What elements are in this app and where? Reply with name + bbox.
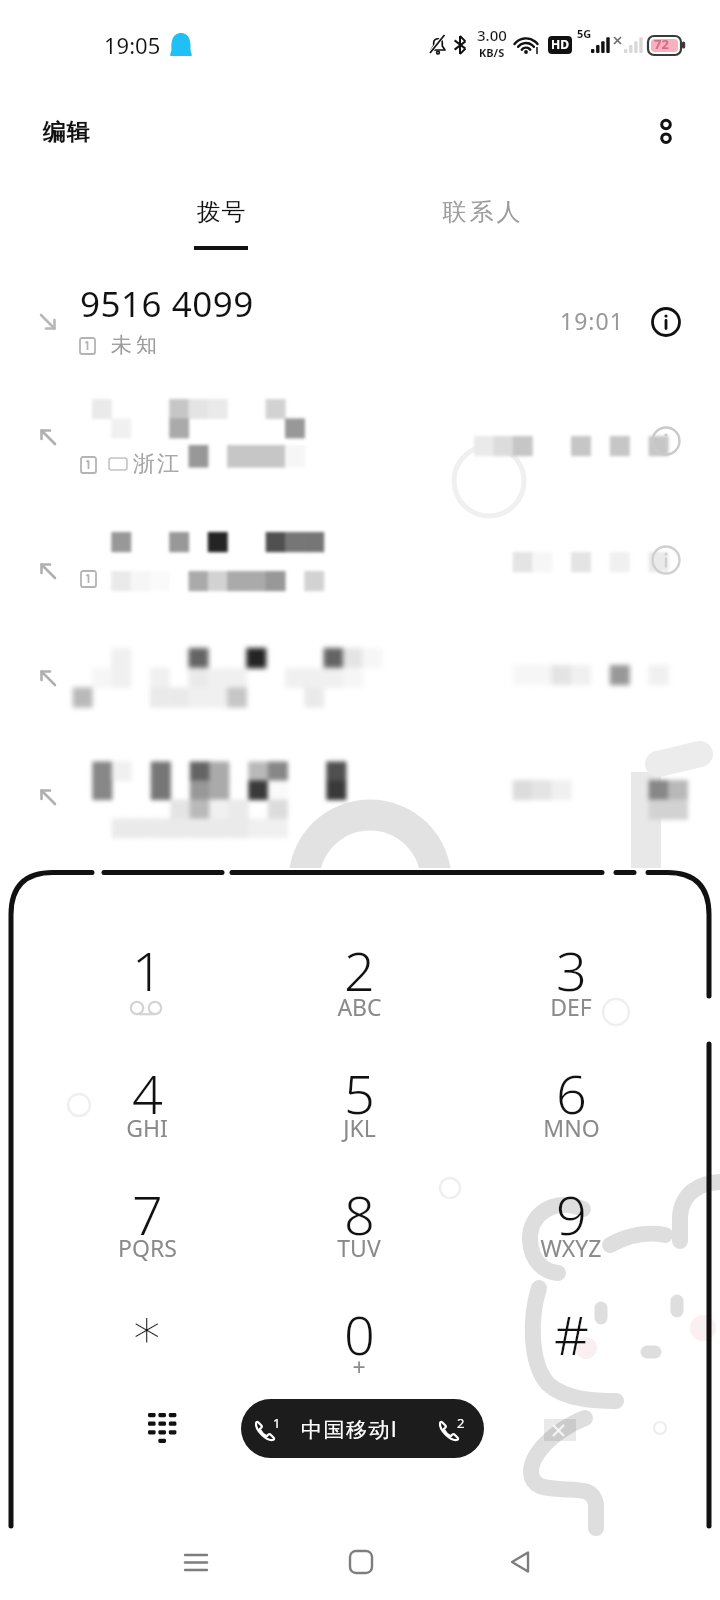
staticText: 2 (457, 1414, 465, 1432)
staticText: 2 (344, 933, 375, 1007)
button[interactable]: Recent apps (158, 1534, 233, 1590)
button[interactable]: 拨号 (151, 197, 291, 265)
staticText: # (554, 1297, 589, 1371)
staticText: ABC (337, 991, 382, 1022)
staticText: 8 (344, 1177, 375, 1251)
staticText: 7 (132, 1177, 163, 1251)
button[interactable]: Back (483, 1534, 558, 1590)
button[interactable]: More options (638, 104, 694, 160)
staticText: GHI (126, 1112, 168, 1143)
button[interactable]: 联系人 (411, 197, 551, 265)
button[interactable]: 编辑 (42, 108, 90, 156)
staticText: 4 (132, 1056, 163, 1130)
staticText: 联系人 (441, 197, 522, 227)
button[interactable]: 6 (499, 1040, 643, 1144)
button[interactable]: 9 (499, 1161, 643, 1265)
staticText: 编辑 (42, 118, 90, 147)
staticText: 拨号 (196, 197, 246, 227)
staticText: 19:05 (104, 30, 161, 60)
button[interactable]: 3 (499, 917, 643, 1021)
button[interactable]: 0 (287, 1281, 431, 1385)
button[interactable]: 1 (241, 1399, 484, 1458)
button[interactable]: 9516 4099 (0, 276, 720, 372)
staticText: 72 (654, 35, 669, 53)
staticText: 3 (556, 933, 587, 1007)
staticText: HD (551, 36, 569, 52)
staticText: 浙江 (132, 450, 180, 478)
staticText: KB/S (479, 45, 505, 60)
staticText: JKL (343, 1112, 376, 1143)
button[interactable] (0, 505, 720, 615)
button[interactable]: 2 (287, 917, 431, 1021)
staticText: DEF (550, 991, 592, 1022)
button[interactable]: 1 (75, 917, 219, 1021)
staticText: MNO (543, 1112, 600, 1143)
staticText: WXYZ (540, 1232, 602, 1263)
staticText: 未知 (109, 332, 159, 358)
button[interactable]: # (499, 1281, 643, 1385)
staticText: 19:01 (560, 305, 624, 336)
staticText: 9 (556, 1177, 587, 1251)
staticText: + (352, 1351, 366, 1382)
staticText: 6 (556, 1056, 587, 1130)
button[interactable] (0, 625, 720, 740)
staticText: PQRS (118, 1232, 177, 1263)
button[interactable]: Keypad (129, 1393, 199, 1463)
button[interactable]: Home (323, 1534, 398, 1590)
button[interactable]: ∗ (75, 1281, 219, 1385)
staticText: 1 (273, 1414, 281, 1432)
staticText: 1 (132, 933, 163, 1007)
button[interactable]: 8 (287, 1161, 431, 1265)
button[interactable]: 浙江 (0, 385, 720, 497)
staticText: 中国移动l (301, 1415, 398, 1444)
staticText: 0 (344, 1297, 375, 1371)
staticText: 3.00 (477, 25, 507, 45)
staticText: 5 (344, 1056, 375, 1130)
staticText: TUV (337, 1232, 381, 1263)
button[interactable]: 4 (75, 1040, 219, 1144)
button[interactable]: 5 (287, 1040, 431, 1144)
staticText: ∗ (130, 1297, 164, 1360)
button[interactable]: 7 (75, 1161, 219, 1265)
staticText: 5G (577, 26, 592, 41)
button[interactable] (0, 740, 720, 860)
staticText: 9516 4099 (80, 280, 254, 328)
